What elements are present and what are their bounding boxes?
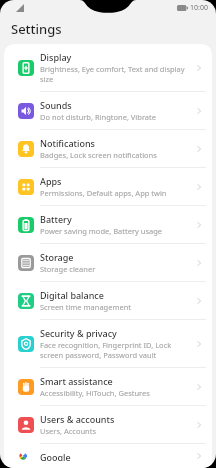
button[interactable]: Battery bbox=[4, 206, 212, 244]
button[interactable]: Sounds bbox=[4, 92, 212, 130]
staticText: Storage bbox=[40, 251, 74, 263]
staticText: Users & accounts bbox=[40, 413, 115, 425]
staticText: Face recognition, Fingerprint ID, Lock s… bbox=[40, 340, 191, 360]
staticText: Notifications bbox=[40, 137, 95, 149]
other: Open Digital balance bbox=[195, 296, 205, 306]
staticText: Brightness, Eye comfort, Text and displa… bbox=[40, 64, 191, 84]
button[interactable]: Users & accounts bbox=[4, 406, 212, 444]
other: Open Google bbox=[195, 451, 205, 461]
other: Open Battery bbox=[195, 220, 205, 230]
other: Open Apps bbox=[195, 182, 205, 192]
button[interactable]: Smart assistance bbox=[4, 368, 212, 406]
staticText: Do not disturb, Ringtone, Vibrate bbox=[40, 112, 157, 122]
other: Open Notifications bbox=[195, 144, 205, 154]
other: Open Display bbox=[195, 63, 205, 73]
button[interactable]: Security & privacy bbox=[4, 320, 212, 368]
staticText: Badges, Lock screen notifications bbox=[40, 150, 157, 160]
staticText: Battery bbox=[40, 213, 72, 225]
staticText: Apps bbox=[40, 175, 62, 187]
other: Open Users & accounts bbox=[195, 420, 205, 430]
staticText: Permissions, Default apps, App twin bbox=[40, 188, 167, 198]
other: Open Sounds bbox=[195, 106, 205, 116]
button[interactable]: Notifications bbox=[4, 130, 212, 168]
other: Open Security & privacy bbox=[195, 339, 205, 349]
staticText: Settings bbox=[11, 20, 62, 38]
staticText: 10:00 bbox=[190, 3, 208, 13]
staticText: Google bbox=[40, 451, 71, 461]
staticText: Display bbox=[40, 51, 72, 63]
button[interactable]: Display bbox=[4, 44, 212, 92]
staticText: Screen time management bbox=[40, 302, 132, 312]
staticText: Storage cleaner bbox=[40, 264, 96, 274]
other: Open Smart assistance bbox=[195, 382, 205, 392]
button[interactable]: Google bbox=[4, 444, 212, 468]
staticText: Digital balance bbox=[40, 289, 104, 301]
button[interactable]: Storage bbox=[4, 244, 212, 282]
staticText: Sounds bbox=[40, 99, 72, 111]
button[interactable]: Digital balance bbox=[4, 282, 212, 320]
staticText: Power saving mode, Battery usage bbox=[40, 226, 163, 236]
button[interactable]: Apps bbox=[4, 168, 212, 206]
staticText: Smart assistance bbox=[40, 375, 113, 387]
staticText: Security & privacy bbox=[40, 327, 117, 339]
staticText: Accessibility, HiTouch, Gestures bbox=[40, 388, 150, 398]
other: Open Storage bbox=[195, 258, 205, 268]
staticText: Users, Accounts bbox=[40, 426, 97, 436]
